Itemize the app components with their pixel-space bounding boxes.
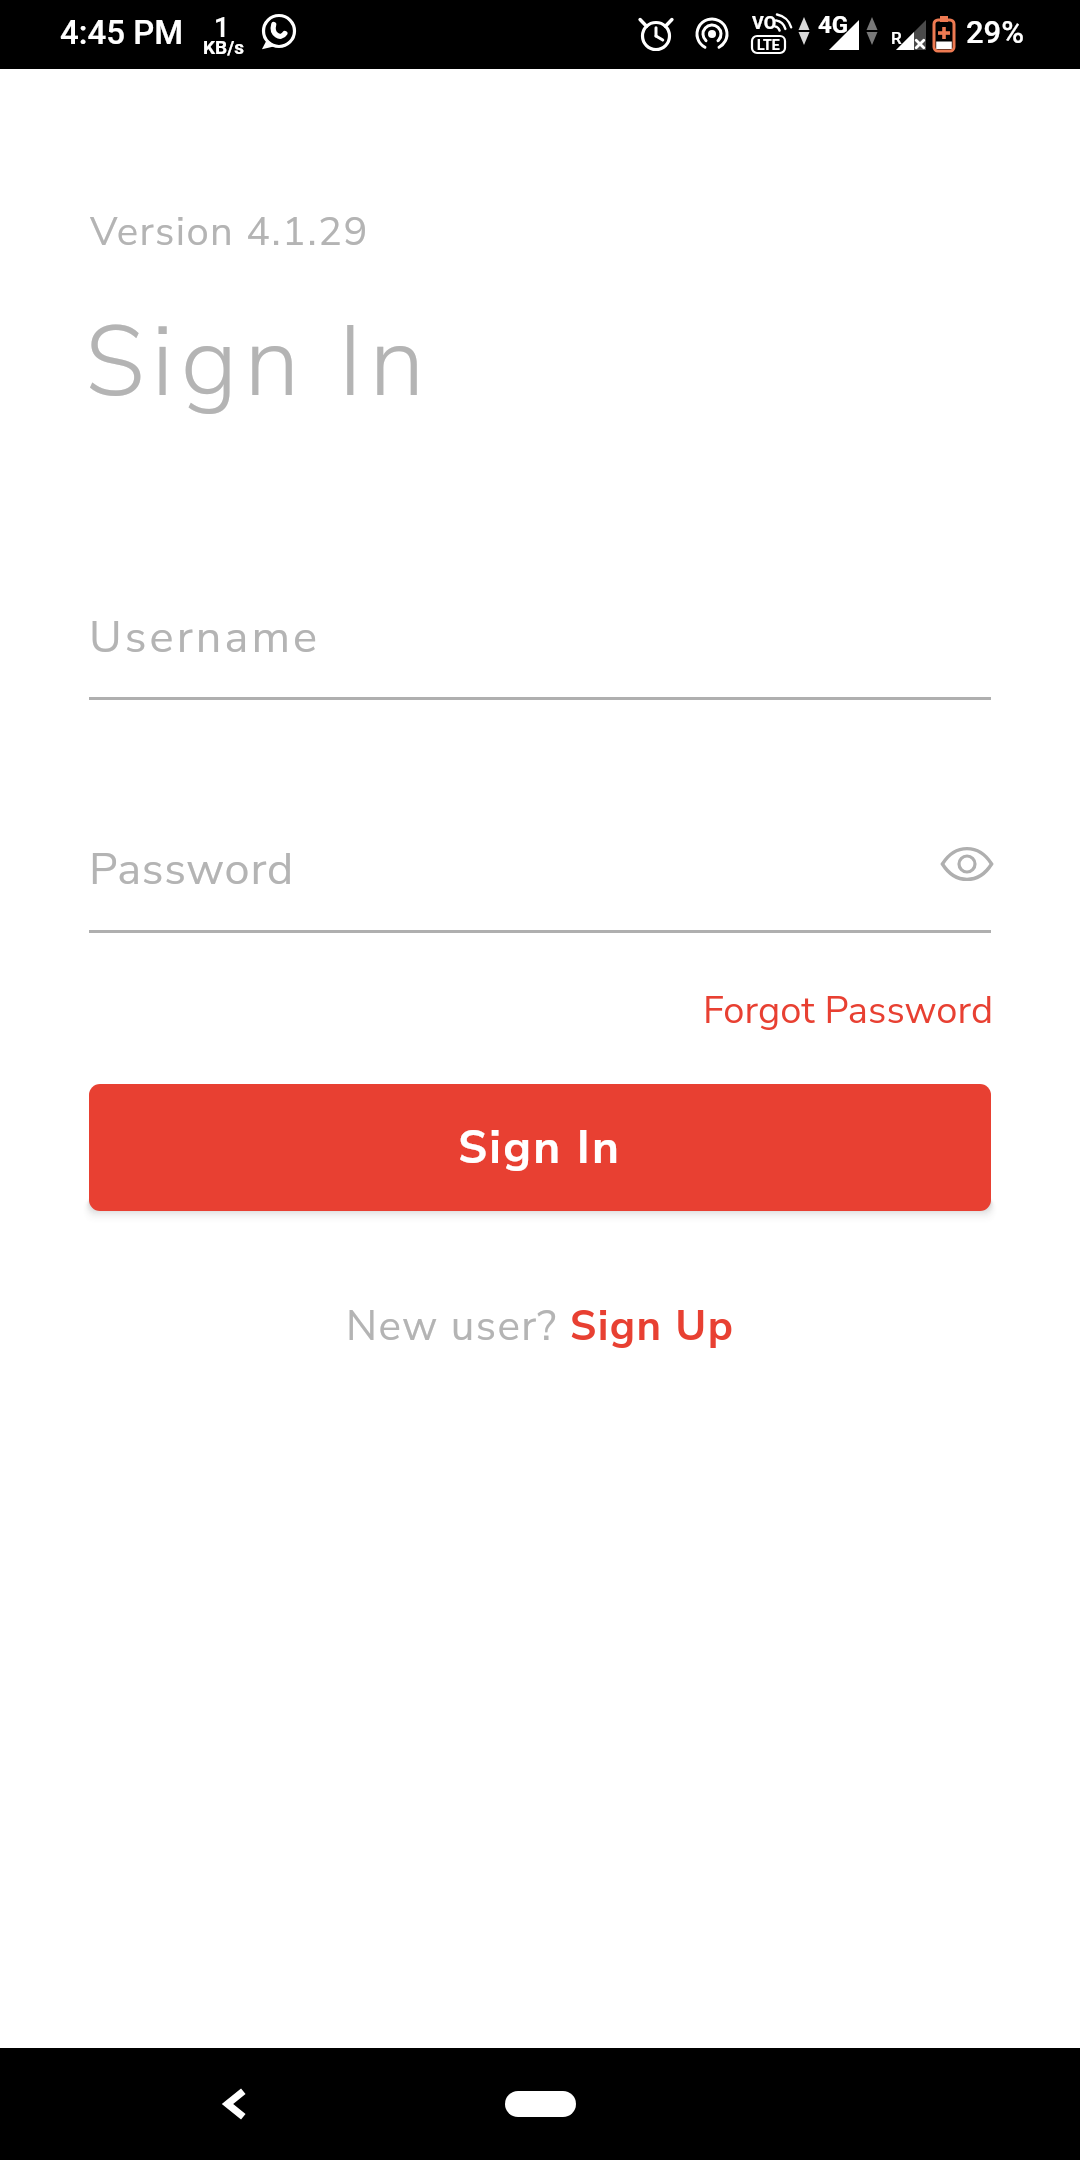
staticText: Sign In xyxy=(85,296,432,430)
staticText: R xyxy=(891,28,902,48)
staticText: Username xyxy=(89,607,321,668)
staticText: Version 4.1.29 xyxy=(90,205,369,260)
staticText: 4G xyxy=(818,11,849,39)
staticText: 4:45 PM xyxy=(60,13,184,52)
staticText: KB/s xyxy=(203,36,245,58)
button[interactable]: New user? Sign Up xyxy=(346,1298,735,1355)
button[interactable]: Forgot Password xyxy=(703,985,994,1037)
button[interactable]: Home xyxy=(505,2091,576,2117)
staticText: New user? Sign Up xyxy=(346,1298,735,1355)
staticText: 29% xyxy=(966,14,1025,50)
button[interactable]: Back xyxy=(196,2067,270,2141)
staticText: VO xyxy=(752,12,777,33)
staticText: Forgot Password xyxy=(703,985,994,1037)
staticText: Sign In xyxy=(458,1116,622,1179)
button[interactable]: Username xyxy=(89,600,991,700)
staticText: LTE xyxy=(757,37,780,53)
staticText: Password xyxy=(89,839,295,900)
button[interactable]: Password xyxy=(89,832,919,933)
staticText: 1 xyxy=(214,12,230,44)
button[interactable]: Show password xyxy=(937,834,997,894)
button[interactable]: Sign In xyxy=(89,1084,991,1211)
